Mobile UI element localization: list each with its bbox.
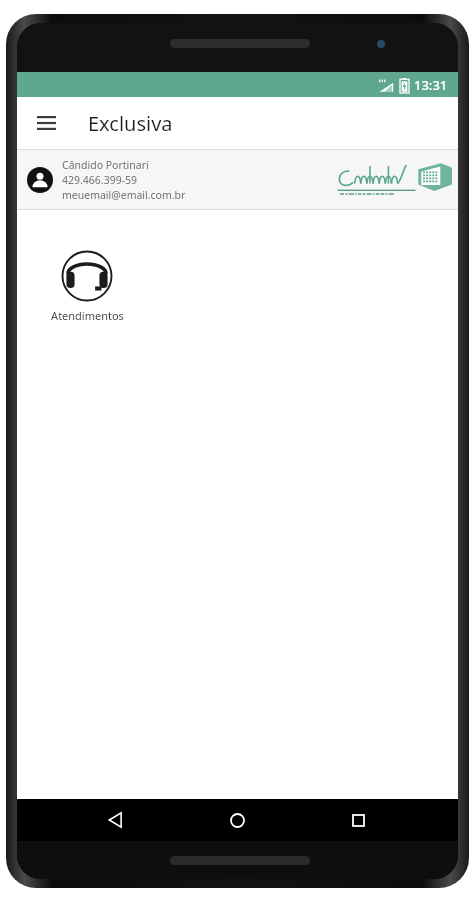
staticText: 429.466.399-59 <box>62 173 138 187</box>
staticText: Atendimentos <box>51 308 124 323</box>
button[interactable]: Cândido Portinari <box>17 150 458 209</box>
button[interactable]: Atendimentos <box>41 248 133 325</box>
staticText: Cândido Portinari <box>62 158 149 172</box>
button[interactable]: Back <box>95 799 137 841</box>
button[interactable]: Home <box>216 799 258 841</box>
staticText: meuemail@email.com.br <box>62 188 186 202</box>
button[interactable]: Recent apps <box>337 799 379 841</box>
staticText: Exclusiva <box>88 110 173 137</box>
button[interactable]: Open navigation menu <box>25 102 67 144</box>
staticText: 13:31 <box>414 76 448 94</box>
